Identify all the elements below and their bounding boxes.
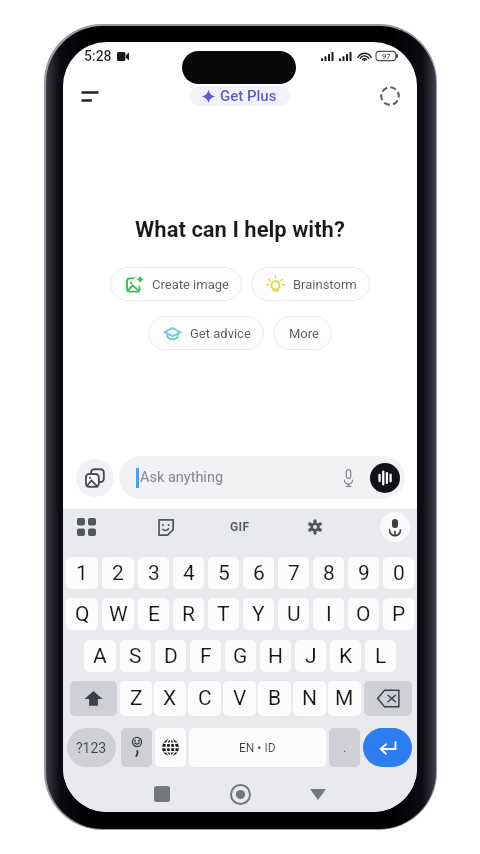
button[interactable]: C (188, 681, 221, 716)
button[interactable]: Create image (110, 267, 242, 301)
button[interactable]: Back (301, 777, 335, 811)
button[interactable]: 1 (66, 557, 98, 589)
staticText: Brainstorm (293, 277, 357, 292)
staticText: 6 (253, 561, 265, 586)
button[interactable]: I (313, 598, 344, 630)
button[interactable]: Apps (72, 513, 100, 541)
staticText: N (302, 686, 317, 711)
staticText: C (198, 686, 212, 711)
staticText: X (163, 686, 177, 711)
staticText: Create image (152, 277, 229, 292)
button[interactable]: M (328, 681, 361, 716)
button[interactable]: V (223, 681, 256, 716)
staticText: . (343, 740, 347, 755)
staticText: P (392, 602, 406, 627)
button[interactable]: Stickers (152, 514, 178, 540)
staticText: 2 (112, 561, 124, 586)
staticText: 3 (148, 561, 160, 586)
staticText: 5:28 (84, 48, 112, 64)
button[interactable]: H (260, 640, 291, 672)
button[interactable]: N (293, 681, 326, 716)
button[interactable]: O (348, 598, 379, 630)
staticText: 1 (76, 561, 88, 586)
button[interactable]: Ask anything (119, 456, 405, 499)
staticText: EN • ID (239, 741, 276, 755)
button[interactable]: R (173, 598, 204, 630)
staticText: L (375, 644, 387, 669)
staticText: F (200, 644, 212, 669)
button[interactable]: Settings (302, 514, 328, 540)
button[interactable]: J (295, 640, 326, 672)
button[interactable]: . (329, 728, 360, 767)
button[interactable]: Voice typing (380, 512, 410, 542)
button[interactable]: Temporary chat (373, 79, 407, 113)
button[interactable]: 6 (243, 557, 274, 589)
button[interactable]: U (278, 598, 309, 630)
button[interactable]: EN • ID (189, 728, 326, 767)
button[interactable]: S (120, 640, 151, 672)
button[interactable]: Emoji (121, 728, 152, 767)
button[interactable]: Recents (145, 777, 179, 811)
button[interactable]: Change language (155, 728, 186, 767)
staticText: More (289, 326, 319, 341)
staticText: D (164, 644, 178, 669)
button[interactable]: Q (66, 598, 98, 630)
button[interactable]: Voice input (333, 463, 363, 493)
button[interactable]: More (273, 316, 332, 350)
button[interactable]: Z (120, 681, 152, 716)
button[interactable]: X (154, 681, 186, 716)
button[interactable]: E (138, 598, 169, 630)
button[interactable]: Get advice (148, 316, 264, 350)
button[interactable]: F (190, 640, 221, 672)
staticText: S (129, 644, 142, 669)
button[interactable]: 2 (102, 557, 134, 589)
staticText: 7 (288, 561, 300, 586)
staticText: T (217, 602, 230, 627)
button[interactable]: D (155, 640, 186, 672)
button[interactable]: Home (223, 777, 257, 811)
button[interactable]: L (365, 640, 396, 672)
staticText: U (287, 602, 301, 627)
staticText: ?123 (76, 740, 107, 756)
button[interactable]: Enter (363, 728, 412, 767)
button[interactable]: 0 (383, 557, 414, 589)
button[interactable]: 3 (138, 557, 169, 589)
staticText: A (93, 644, 107, 669)
staticText: 0 (393, 561, 405, 586)
button[interactable]: K (330, 640, 361, 672)
button[interactable]: Y (243, 598, 274, 630)
button[interactable]: ?123 (67, 728, 116, 767)
staticText: 4 (183, 561, 195, 586)
button[interactable]: P (383, 598, 414, 630)
staticText: Get Plus (220, 87, 277, 105)
button[interactable]: T (208, 598, 239, 630)
staticText: M (335, 686, 354, 711)
button[interactable]: 4 (173, 557, 204, 589)
button[interactable]: 9 (348, 557, 379, 589)
staticText: GIF (230, 520, 250, 534)
staticText: Y (252, 602, 265, 627)
button[interactable]: Menu (72, 78, 108, 114)
button[interactable]: 8 (313, 557, 344, 589)
staticText: Q (75, 602, 90, 627)
staticText: V (233, 686, 247, 711)
button[interactable]: Backspace (364, 681, 412, 716)
button[interactable]: Add photo (76, 459, 114, 497)
button[interactable]: Brainstorm (251, 267, 370, 301)
staticText: K (339, 644, 353, 669)
staticText: B (268, 686, 282, 711)
button[interactable]: 7 (278, 557, 309, 589)
button[interactable]: G (225, 640, 256, 672)
button[interactable]: 5 (208, 557, 239, 589)
button[interactable]: Voice mode (370, 463, 400, 493)
button[interactable]: W (102, 598, 134, 630)
button[interactable]: Shift (70, 681, 117, 716)
staticText: 5 (218, 561, 230, 586)
button[interactable]: B (258, 681, 291, 716)
button[interactable]: Get Plus (190, 86, 290, 106)
staticText: Ask anything (140, 469, 224, 486)
staticText: I (326, 602, 332, 627)
staticText: H (268, 644, 283, 669)
button[interactable]: A (84, 640, 116, 672)
staticText: O (356, 602, 371, 627)
